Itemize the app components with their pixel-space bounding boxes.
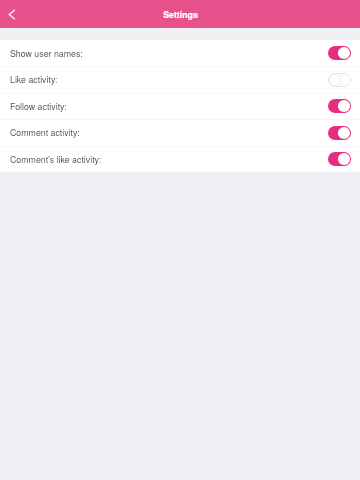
button[interactable]: Like activity: xyxy=(0,66,360,93)
button[interactable]: Follow activity: xyxy=(0,93,360,119)
button[interactable]: Back xyxy=(0,0,26,28)
staticText: Comment's like activity: xyxy=(10,153,102,166)
button[interactable]: Comment activity: xyxy=(0,119,360,146)
staticText: Follow activity: xyxy=(10,100,67,113)
button[interactable]: Show user names: xyxy=(0,40,360,66)
button[interactable]: Comment's like activity: xyxy=(0,146,360,172)
staticText: Like activity: xyxy=(10,73,58,86)
staticText: Settings xyxy=(163,8,198,21)
staticText: Comment activity: xyxy=(10,126,80,139)
staticText: Show user names: xyxy=(10,47,83,60)
